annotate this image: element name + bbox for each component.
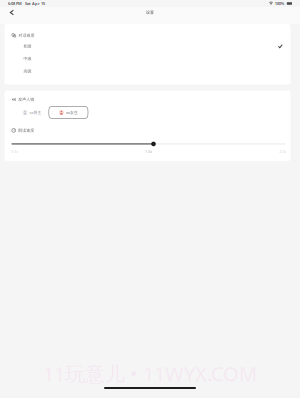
staticText: 6:08 PM (8, 1, 22, 6)
button[interactable]: 初级 (11, 40, 285, 52)
button[interactable]: 高级 (11, 65, 285, 77)
staticText: xx女生 (66, 110, 78, 115)
staticText: 中级 (23, 56, 31, 61)
staticText: 设置 (146, 10, 154, 15)
staticText: Sat Apr 15 (25, 1, 45, 6)
staticText: 高级 (23, 69, 31, 74)
staticText: 100% (275, 1, 285, 6)
button[interactable]: xx男生 (22, 106, 41, 119)
staticText: 朗读速度 (18, 128, 34, 133)
staticText: 初级 (23, 44, 31, 49)
staticText: 11玩意儿 • 11WYX.COM (43, 360, 257, 387)
staticText: 发声人物 (18, 97, 34, 102)
staticText: 对话难度 (18, 33, 34, 38)
staticText: 0.5x (11, 150, 17, 154)
button[interactable]: Back (0, 7, 20, 18)
button[interactable]: xx女生 (48, 106, 88, 119)
staticText: 1.0x (145, 150, 151, 154)
staticText: 2.0x (279, 150, 285, 154)
button[interactable]: 中级 (11, 52, 285, 65)
staticText: xx男生 (29, 110, 41, 115)
